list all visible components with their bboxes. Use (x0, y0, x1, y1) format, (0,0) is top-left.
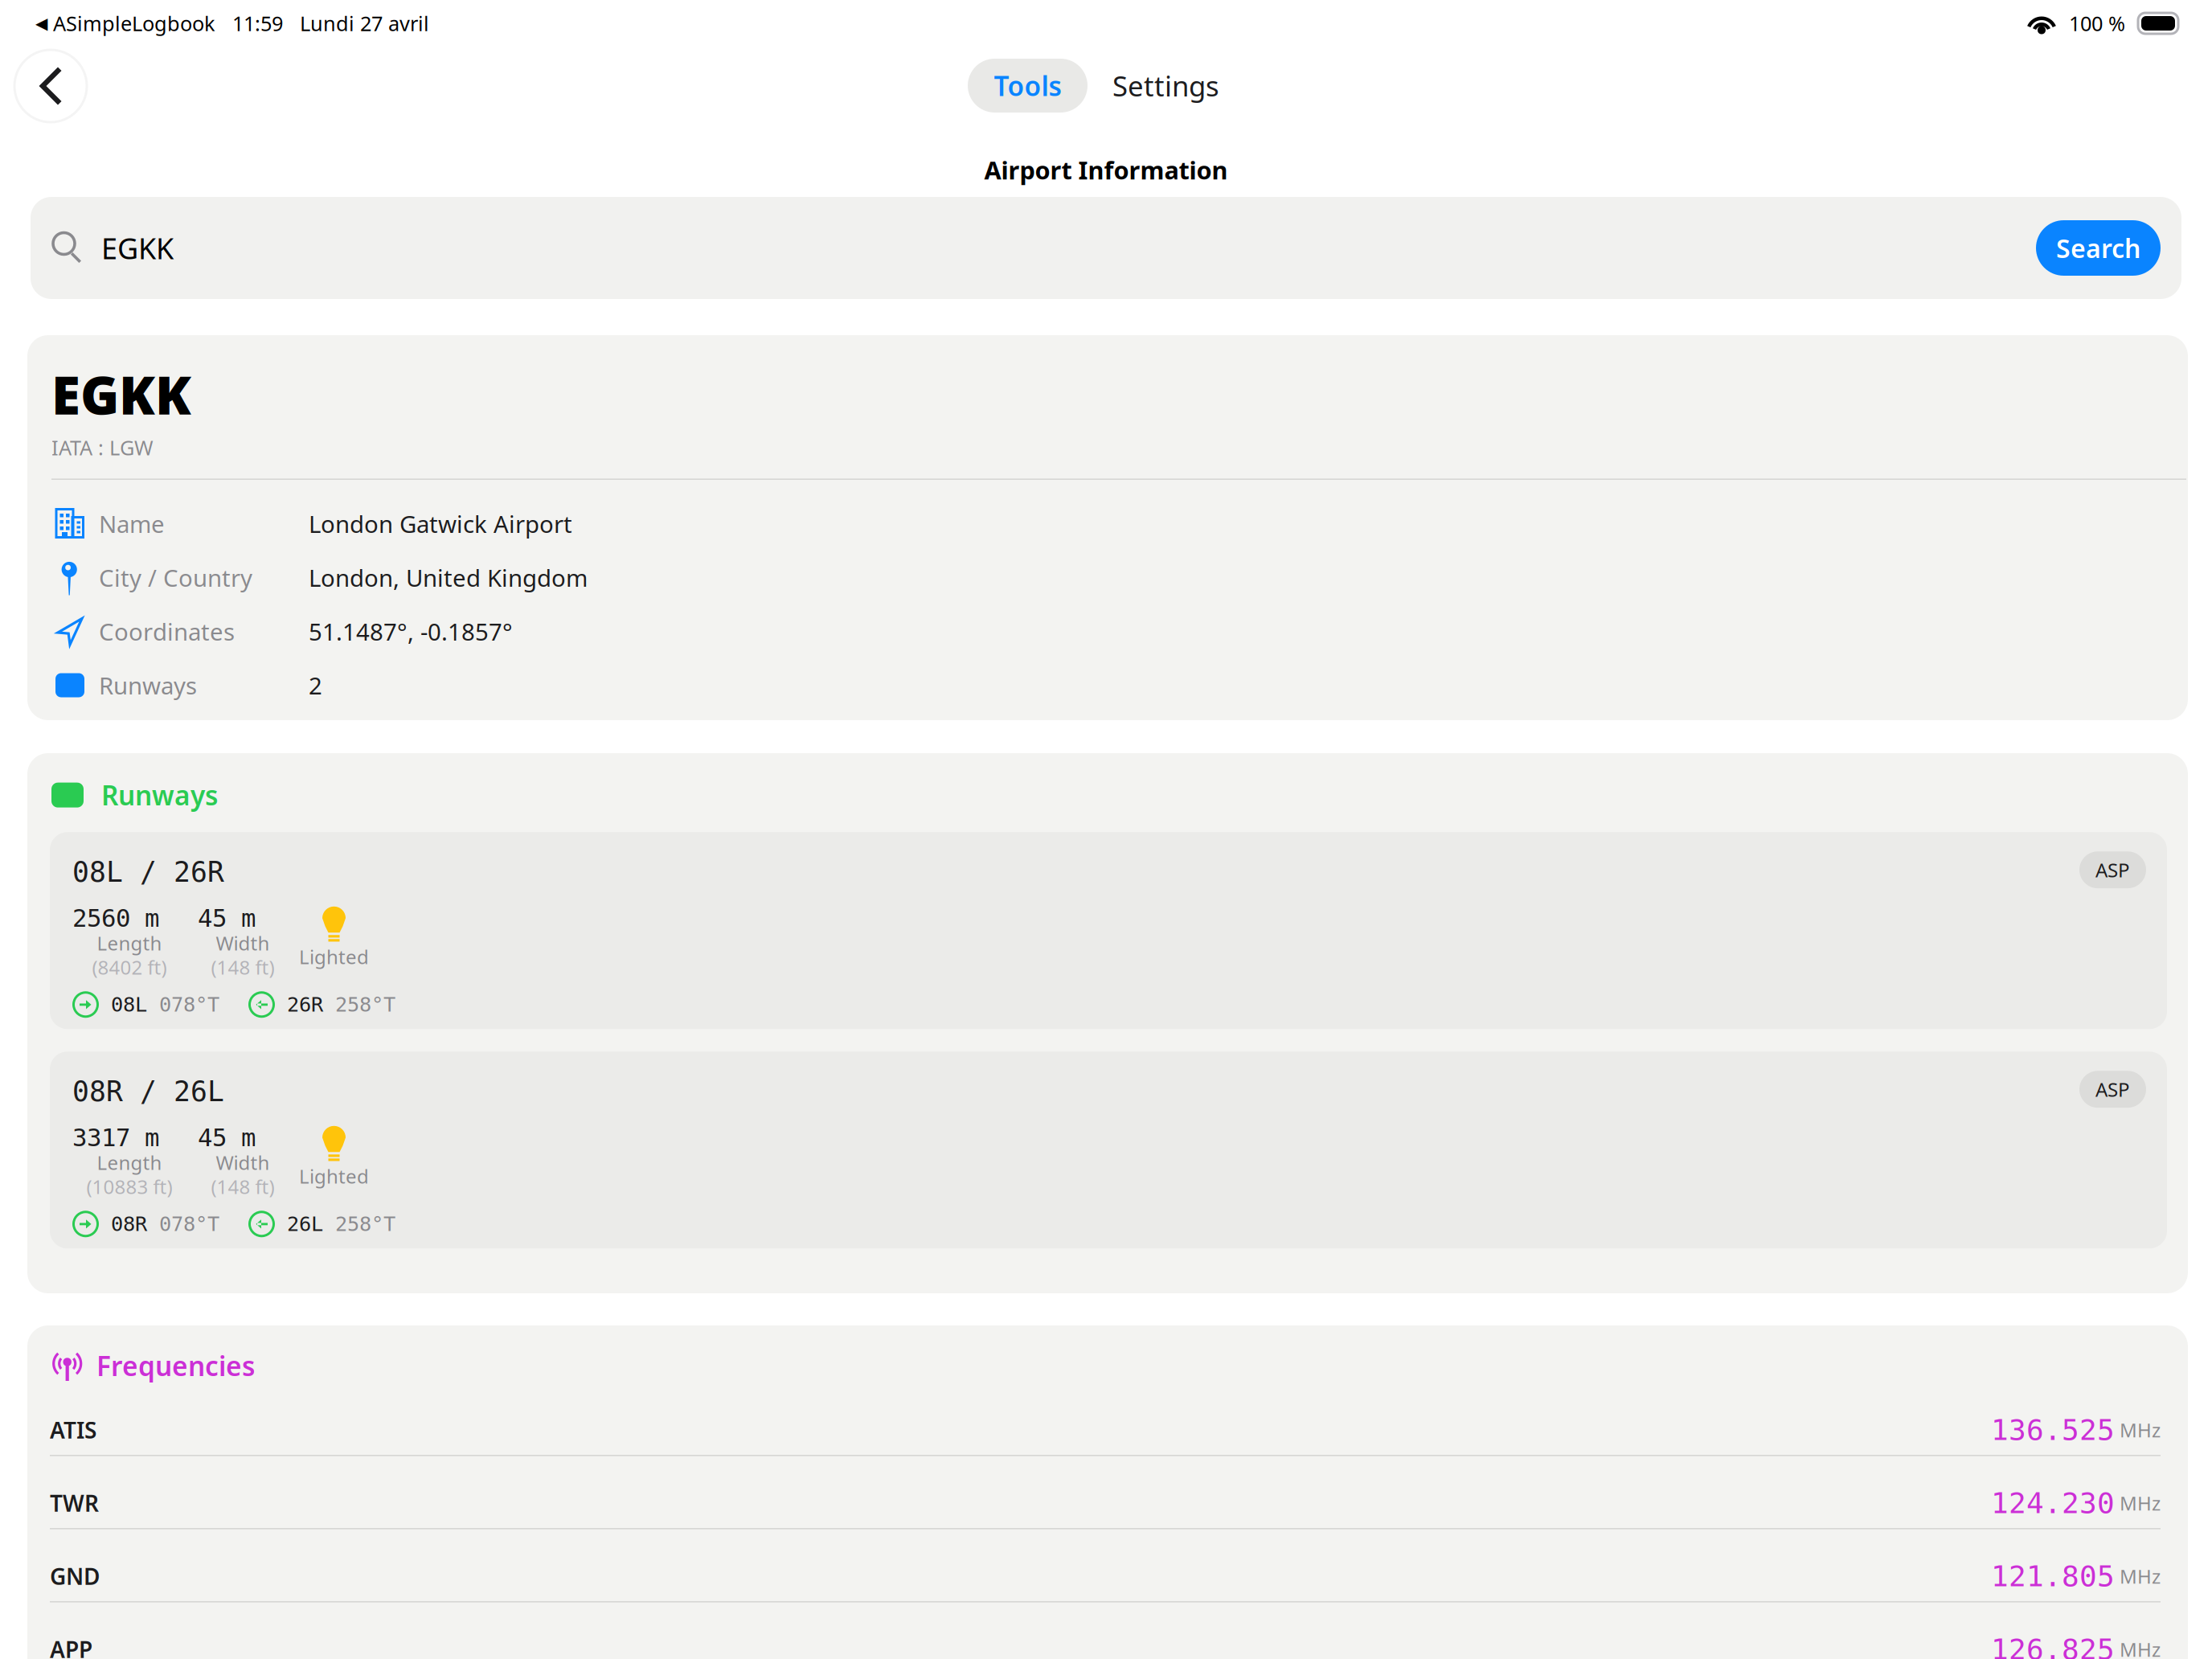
staticText: Search (2056, 231, 2140, 265)
staticText: 124.230 (1991, 1486, 2115, 1520)
staticText: 136.525 (1991, 1413, 2115, 1447)
staticText: London Gatwick Airport (309, 508, 572, 539)
staticText: Tools (994, 68, 1061, 103)
staticText: ASimpleLogbook 11:59 Lundi 27 avril (47, 10, 429, 37)
staticText: 2560 m (72, 904, 159, 932)
staticText: ◀ (35, 14, 47, 32)
button[interactable]: Search (2036, 220, 2161, 276)
button[interactable]: Back (15, 51, 86, 121)
staticText: ATIS (50, 1415, 96, 1445)
staticText: London, United Kingdom (309, 562, 588, 593)
staticText: 3317 m (72, 1123, 159, 1152)
staticText: MHz (2115, 1490, 2161, 1516)
staticText: City / Country (99, 562, 252, 593)
staticText: (148 ft) (211, 1174, 274, 1199)
staticText: 258°T (335, 993, 395, 1016)
staticText: 08R / 26L (72, 1075, 224, 1108)
staticText: 126.825 (1991, 1632, 2115, 1659)
staticText: Lighted (299, 944, 369, 970)
staticText: ASP (2095, 1077, 2130, 1102)
staticText: Runways (99, 670, 197, 701)
staticText: MHz (2115, 1637, 2161, 1659)
staticText: Runways (101, 777, 218, 813)
staticText: (8402 ft) (92, 954, 167, 980)
staticText: 258°T (335, 1212, 395, 1236)
staticText: 100 % (2058, 10, 2136, 37)
staticText: Airport Information (984, 154, 1228, 186)
staticText: MHz (2115, 1417, 2161, 1443)
button[interactable]: Tools (968, 59, 1088, 113)
staticText: Name (99, 508, 165, 539)
staticText: MHz (2115, 1563, 2161, 1589)
staticText: EGKK (51, 359, 191, 429)
staticText: GND (50, 1561, 100, 1591)
staticText: IATA : LGW (51, 434, 154, 461)
staticText: APP (50, 1634, 92, 1659)
staticText: (10883 ft) (86, 1174, 172, 1199)
staticText: 121.805 (1991, 1559, 2115, 1593)
staticText: 26L (275, 1212, 335, 1236)
staticText: 45 m (198, 1123, 256, 1152)
staticText: TWR (50, 1488, 99, 1518)
staticText: Width (216, 1150, 270, 1175)
staticText: Width (216, 930, 270, 956)
button[interactable]: Settings (1088, 59, 1244, 113)
staticText: 2 (309, 670, 322, 701)
staticText: EGKK (101, 229, 174, 267)
staticText: Length (97, 1150, 162, 1175)
staticText: 08L (99, 993, 159, 1016)
staticText: 45 m (198, 904, 256, 932)
staticText: Lighted (299, 1163, 369, 1189)
staticText: Coordinates (99, 616, 235, 647)
staticText: 078°T (159, 1212, 219, 1236)
staticText: (148 ft) (211, 954, 274, 980)
staticText: 08L / 26R (72, 856, 224, 888)
staticText: 08R (99, 1212, 159, 1236)
staticText: ASP (2095, 857, 2130, 883)
staticText: Length (97, 930, 162, 956)
staticText: 26R (275, 993, 335, 1016)
staticText: 078°T (159, 993, 219, 1016)
staticText: Settings (1112, 67, 1219, 104)
staticText: 51.1487°, -0.1857° (309, 616, 513, 647)
staticText: Frequencies (96, 1348, 255, 1383)
